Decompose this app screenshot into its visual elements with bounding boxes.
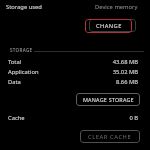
staticText: 43.68 MB: [98, 58, 138, 66]
button[interactable]: CHANGE: [85, 19, 132, 33]
staticText: CHANGE: [96, 22, 122, 30]
button[interactable]: CLEAR CACHE: [80, 130, 140, 143]
staticText: Device memory: [95, 3, 138, 11]
staticText: Storage used: [6, 3, 42, 11]
staticText: 0 B: [108, 114, 138, 122]
staticText: 8.66 MB: [98, 78, 138, 86]
staticText: CLEAR CACHE: [88, 133, 132, 141]
staticText: Cache: [8, 114, 25, 122]
staticText: Total: [8, 58, 22, 66]
staticText: STORAGE: [10, 47, 33, 53]
staticText: Application: [8, 68, 39, 76]
staticText: MANAGE STORAGE: [83, 96, 134, 103]
staticText: Data: [8, 78, 21, 86]
staticText: 35.02 MB: [98, 68, 138, 76]
button[interactable]: MANAGE STORAGE: [76, 93, 140, 106]
